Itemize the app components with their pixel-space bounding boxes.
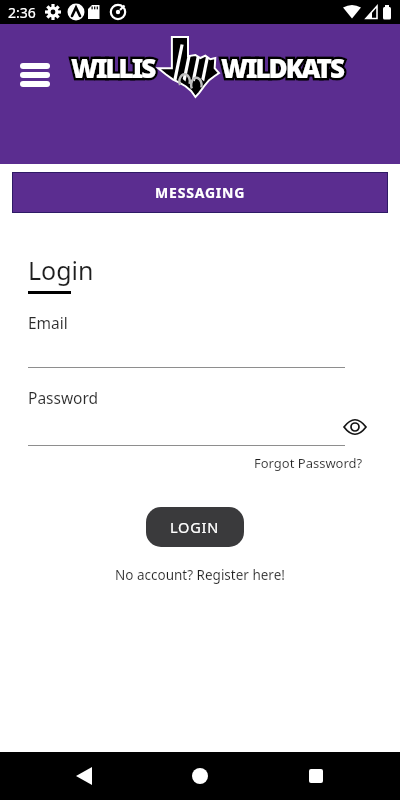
staticText: Forgot Password? [254,454,363,472]
staticText: 2:36 [8,3,36,22]
staticText: WILDKATS [221,50,343,85]
staticText: LOGIN [170,517,220,537]
staticText: Email [28,312,68,333]
staticText: MESSAGING [155,183,246,202]
staticText: WILLIS [71,50,155,85]
staticText: WILDKATS [221,50,343,85]
staticText: Login [28,253,94,287]
staticText: WILLIS [71,50,155,85]
staticText: No account? Register here! [115,566,285,584]
staticText: Password [28,387,99,408]
